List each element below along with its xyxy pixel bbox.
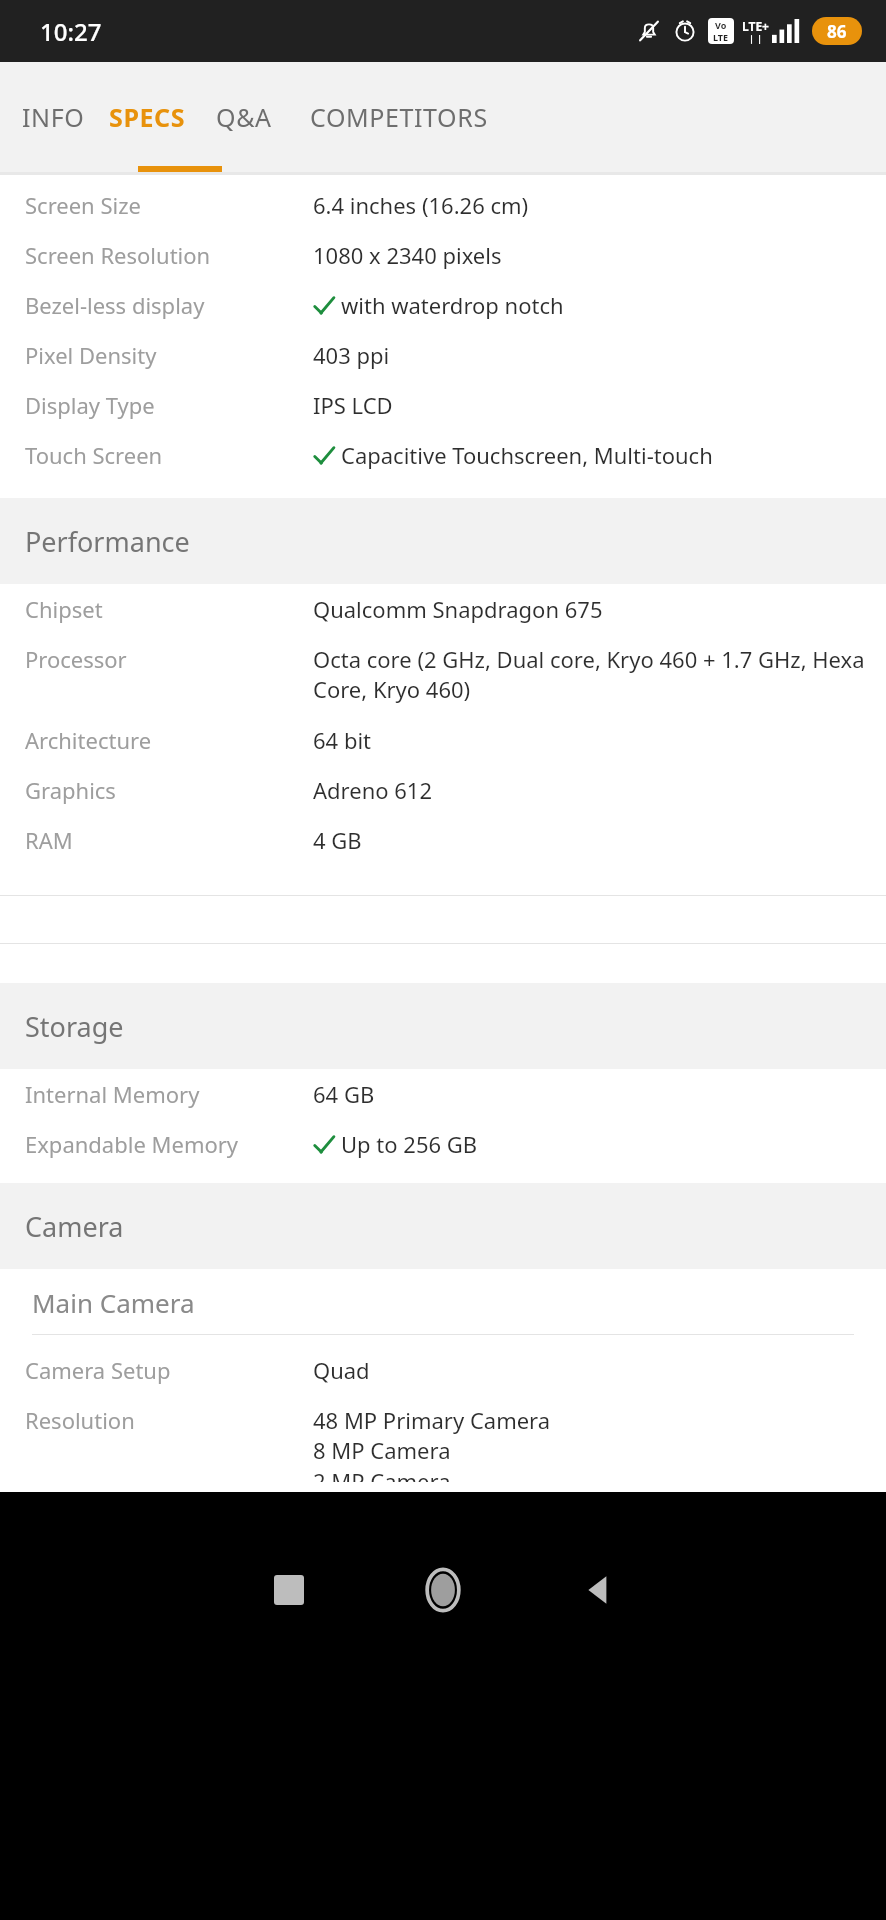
staticText: IPS LCD — [313, 390, 393, 420]
button[interactable]: Camera Setup — [0, 1345, 886, 1395]
staticText: Vo — [715, 19, 727, 31]
staticText: Screen Size — [25, 190, 313, 220]
staticText: Performance — [25, 523, 190, 560]
button[interactable]: INFO — [22, 82, 85, 152]
button[interactable]: Recent apps — [241, 1542, 337, 1638]
staticText: 10:27 — [40, 15, 102, 48]
staticText: Up to 256 GB — [341, 1129, 478, 1159]
staticText: Expandable Memory — [25, 1129, 313, 1159]
staticText: 86 — [827, 20, 847, 43]
staticText: Internal Memory — [25, 1079, 313, 1109]
staticText: Octa core (2 GHz, Dual core, Kryo 460 + … — [313, 644, 872, 705]
staticText: Main Camera — [32, 1285, 195, 1320]
button[interactable]: SPECS — [109, 82, 186, 152]
staticText: RAM — [25, 825, 313, 855]
staticText: Processor — [25, 644, 313, 674]
button[interactable]: Processor — [0, 634, 886, 715]
staticText: 64 bit — [313, 725, 372, 755]
button[interactable]: Internal Memory — [0, 1069, 886, 1119]
staticText: Camera — [25, 1208, 124, 1245]
button[interactable]: Screen Size — [0, 180, 886, 230]
staticText: Chipset — [25, 594, 313, 624]
staticText: Bezel-less display — [25, 290, 313, 320]
button[interactable]: Pixel Density — [0, 330, 886, 380]
staticText: Graphics — [25, 775, 313, 805]
staticText: Display Type — [25, 390, 313, 420]
button[interactable]: Touch Screen — [0, 430, 886, 480]
staticText: Adreno 612 — [313, 775, 433, 805]
staticText: INFO — [22, 100, 85, 134]
button[interactable]: Screen Resolution — [0, 230, 886, 280]
button[interactable]: Back — [549, 1542, 645, 1638]
staticText: with waterdrop notch — [341, 290, 564, 320]
button[interactable]: Resolution — [0, 1395, 886, 1492]
staticText: Capacitive Touchscreen, Multi-touch — [341, 440, 713, 470]
staticText: Resolution — [25, 1405, 313, 1435]
button[interactable]: RAM — [0, 815, 886, 865]
staticText: 6.4 inches (16.26 cm) — [313, 190, 529, 220]
staticText: 48 MP Primary Camera 8 MP Camera 2 MP Ca… — [313, 1405, 551, 1482]
staticText: LTE+ — [742, 18, 769, 34]
button[interactable]: Expandable Memory — [0, 1119, 886, 1169]
button[interactable]: Architecture — [0, 715, 886, 765]
staticText: LTE — [713, 31, 729, 43]
staticText: 403 ppi — [313, 340, 390, 370]
staticText: Quad — [313, 1355, 370, 1385]
button[interactable]: Q&A — [216, 82, 272, 152]
staticText: COMPETITORS — [310, 100, 488, 134]
staticText: Camera Setup — [25, 1355, 313, 1385]
button[interactable]: Chipset — [0, 584, 886, 634]
staticText: Architecture — [25, 725, 313, 755]
staticText: 1080 x 2340 pixels — [313, 240, 502, 270]
staticText: Touch Screen — [25, 440, 313, 470]
button[interactable]: Graphics — [0, 765, 886, 815]
staticText: Storage — [25, 1008, 124, 1045]
button[interactable]: Display Type — [0, 380, 886, 430]
staticText: Q&A — [216, 100, 272, 134]
staticText: 4 GB — [313, 825, 362, 855]
staticText: SPECS — [109, 100, 186, 134]
button[interactable]: Home — [395, 1542, 491, 1638]
staticText: 64 GB — [313, 1079, 375, 1109]
staticText: Qualcomm Snapdragon 675 — [313, 594, 603, 624]
button[interactable]: Bezel-less display — [0, 280, 886, 330]
button[interactable]: COMPETITORS — [310, 82, 488, 152]
staticText: Pixel Density — [25, 340, 313, 370]
staticText: Screen Resolution — [25, 240, 313, 270]
